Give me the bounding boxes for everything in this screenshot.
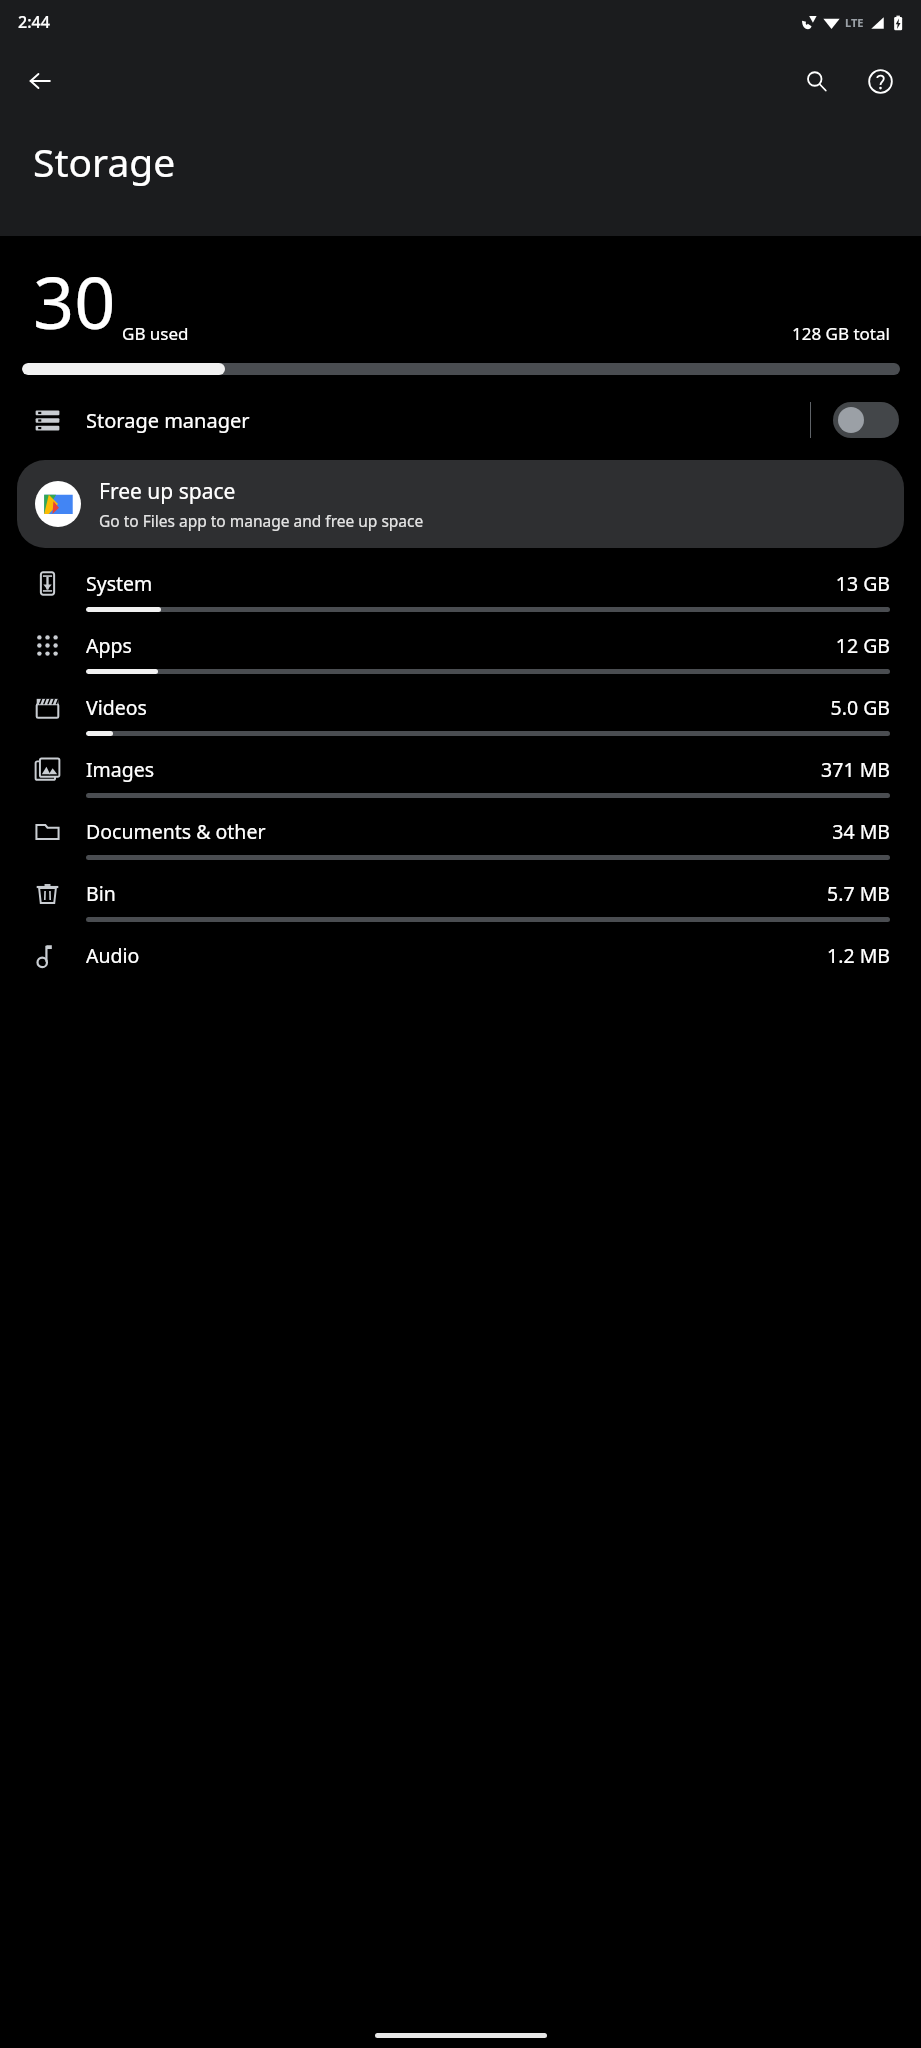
staticText: 371 MB (821, 756, 890, 783)
staticText: Storage (33, 135, 176, 188)
button[interactable]: Free up space (17, 460, 904, 548)
staticText: GB used (122, 322, 189, 345)
staticText: Free up space (99, 477, 236, 506)
staticText: Audio (86, 942, 827, 969)
staticText: 2:44 (18, 11, 50, 33)
staticText: 1.2 MB (827, 942, 890, 969)
staticText: Documents & other (86, 818, 832, 845)
staticText: 128 GB total (792, 322, 890, 345)
button[interactable]: Audio (0, 932, 921, 969)
staticText: 30 (33, 252, 116, 350)
button[interactable]: Back (16, 57, 64, 105)
button[interactable]: System (0, 560, 921, 622)
staticText: Images (86, 756, 821, 783)
staticText: Go to Files app to manage and free up sp… (99, 510, 424, 531)
staticText: 5.0 GB (830, 694, 890, 721)
button[interactable]: Videos (0, 684, 921, 746)
staticText: Storage manager (86, 407, 810, 434)
staticText: 12 GB (835, 632, 890, 659)
button[interactable]: Bin (0, 870, 921, 932)
button[interactable]: Storage manager toggle (833, 402, 899, 438)
button[interactable]: Images (0, 746, 921, 808)
staticText: Bin (86, 880, 827, 907)
button[interactable]: Documents & other (0, 808, 921, 870)
staticText: 34 MB (832, 818, 890, 845)
staticText: Apps (86, 632, 835, 659)
staticText: 5.7 MB (827, 880, 890, 907)
button[interactable]: Search (793, 58, 839, 104)
staticText: Videos (86, 694, 830, 721)
staticText: LTE (845, 15, 864, 30)
button[interactable]: Storage manager (0, 389, 921, 451)
staticText: System (86, 570, 835, 597)
button[interactable]: Help (857, 58, 903, 104)
button[interactable]: Apps (0, 622, 921, 684)
staticText: 13 GB (835, 570, 890, 597)
